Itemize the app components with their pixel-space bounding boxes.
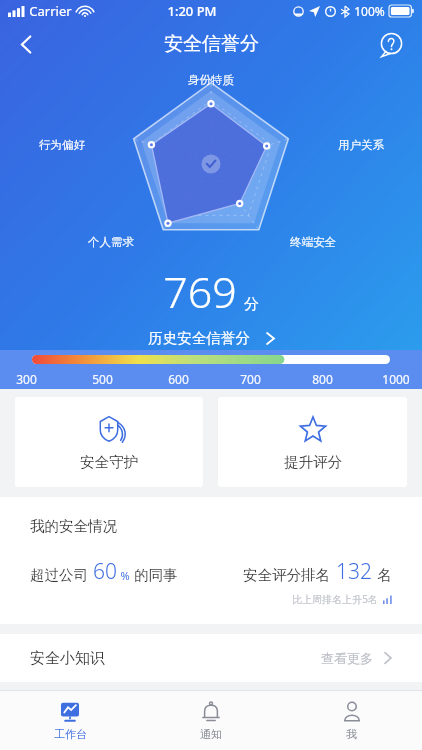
staticText: 身份特质 (188, 73, 234, 87)
button[interactable]: 安全守护 (15, 397, 203, 487)
staticText: 我的安全情况 (30, 517, 117, 535)
staticText: 安全守护 (80, 453, 138, 471)
staticText: 我 (346, 727, 357, 741)
staticText: 历史安全信誉分 (148, 329, 250, 347)
button[interactable]: Help (370, 23, 412, 65)
button[interactable]: 历史安全信誉分 (138, 326, 285, 350)
staticText: 安全评分排名 (243, 566, 330, 584)
staticText: 300 (16, 371, 37, 387)
staticText: 700 (240, 371, 261, 387)
staticText: 提升评分 (284, 453, 342, 471)
staticText: 60 (93, 557, 117, 586)
staticText: Carrier (29, 2, 72, 20)
staticText: 769 (163, 262, 237, 321)
staticText: 查看更多 (321, 650, 373, 666)
staticText: 132 (336, 557, 372, 586)
staticText: % (120, 568, 130, 583)
staticText: 行为偏好 (39, 138, 85, 152)
staticText: 1:20 PM (167, 2, 217, 20)
staticText: 的同事 (134, 566, 178, 584)
button[interactable]: 通知 (140, 691, 281, 750)
staticText: 安全小知识 (30, 649, 105, 668)
staticText: 100% (354, 3, 385, 19)
staticText: 比上周排名上升5名 (292, 592, 378, 606)
staticText: 1000 (382, 371, 410, 387)
button[interactable]: 工作台 (0, 691, 140, 750)
staticText: 800 (312, 371, 333, 387)
staticText: 安全信誉分 (164, 32, 259, 56)
staticText: 工作台 (54, 727, 87, 741)
button[interactable]: 安全小知识 (0, 634, 422, 682)
staticText: 用户关系 (338, 138, 384, 152)
button[interactable]: 我 (281, 691, 422, 750)
staticText: 个人需求 (88, 235, 134, 249)
staticText: 分 (244, 295, 259, 314)
staticText: 600 (168, 371, 189, 387)
staticText: 通知 (200, 727, 222, 741)
staticText: 终端安全 (290, 235, 336, 249)
button[interactable]: Back (4, 22, 48, 66)
staticText: 名 (377, 566, 392, 584)
staticText: 500 (92, 371, 113, 387)
staticText: 超过公司 (30, 566, 88, 584)
button[interactable]: 提升评分 (218, 397, 407, 487)
